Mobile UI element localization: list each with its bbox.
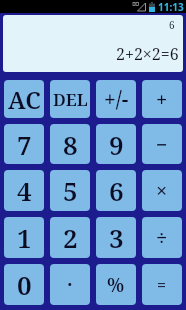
button[interactable]: 2 <box>50 217 90 258</box>
staticText: +/- <box>104 85 129 114</box>
staticText: DEL <box>53 88 88 111</box>
button[interactable]: − <box>142 124 182 164</box>
button[interactable]: 6 <box>96 170 136 211</box>
staticText: 5 <box>63 173 78 208</box>
staticText: 8 <box>63 127 78 162</box>
staticText: + <box>156 86 168 113</box>
button[interactable]: 5 <box>50 170 90 211</box>
staticText: × <box>156 177 168 204</box>
button[interactable]: 8 <box>50 124 90 164</box>
button[interactable]: 0 <box>4 264 44 305</box>
button[interactable]: % <box>96 264 136 305</box>
button[interactable]: 4 <box>4 170 44 211</box>
button[interactable]: = <box>142 264 182 305</box>
staticText: 6 <box>169 18 175 32</box>
staticText: 4 <box>17 173 32 208</box>
button[interactable]: 1 <box>4 217 44 258</box>
staticText: 0 <box>17 267 32 302</box>
staticText: 7 <box>17 127 32 162</box>
button[interactable]: 7 <box>4 124 44 164</box>
button[interactable]: AC <box>4 80 44 118</box>
staticText: ÷ <box>156 224 168 251</box>
staticText: − <box>156 131 168 158</box>
staticText: 1 <box>17 220 32 255</box>
staticText: 11:13 <box>158 0 184 13</box>
staticText: · <box>67 271 73 298</box>
button[interactable]: DEL <box>50 80 90 118</box>
staticText: 6 <box>109 173 124 208</box>
staticText: % <box>107 272 125 298</box>
button[interactable]: ÷ <box>142 217 182 258</box>
staticText: 2 <box>63 220 78 255</box>
button[interactable]: 9 <box>96 124 136 164</box>
button[interactable]: 3 <box>96 217 136 258</box>
staticText: AC <box>8 83 41 116</box>
button[interactable]: · <box>50 264 90 305</box>
staticText: 9 <box>109 127 124 162</box>
button[interactable]: + <box>142 80 182 118</box>
staticText: = <box>157 274 167 296</box>
button[interactable]: +/- <box>96 80 136 118</box>
staticText: 2+2×2=6 <box>116 43 179 65</box>
button[interactable]: × <box>142 170 182 211</box>
staticText: 3 <box>109 220 124 255</box>
